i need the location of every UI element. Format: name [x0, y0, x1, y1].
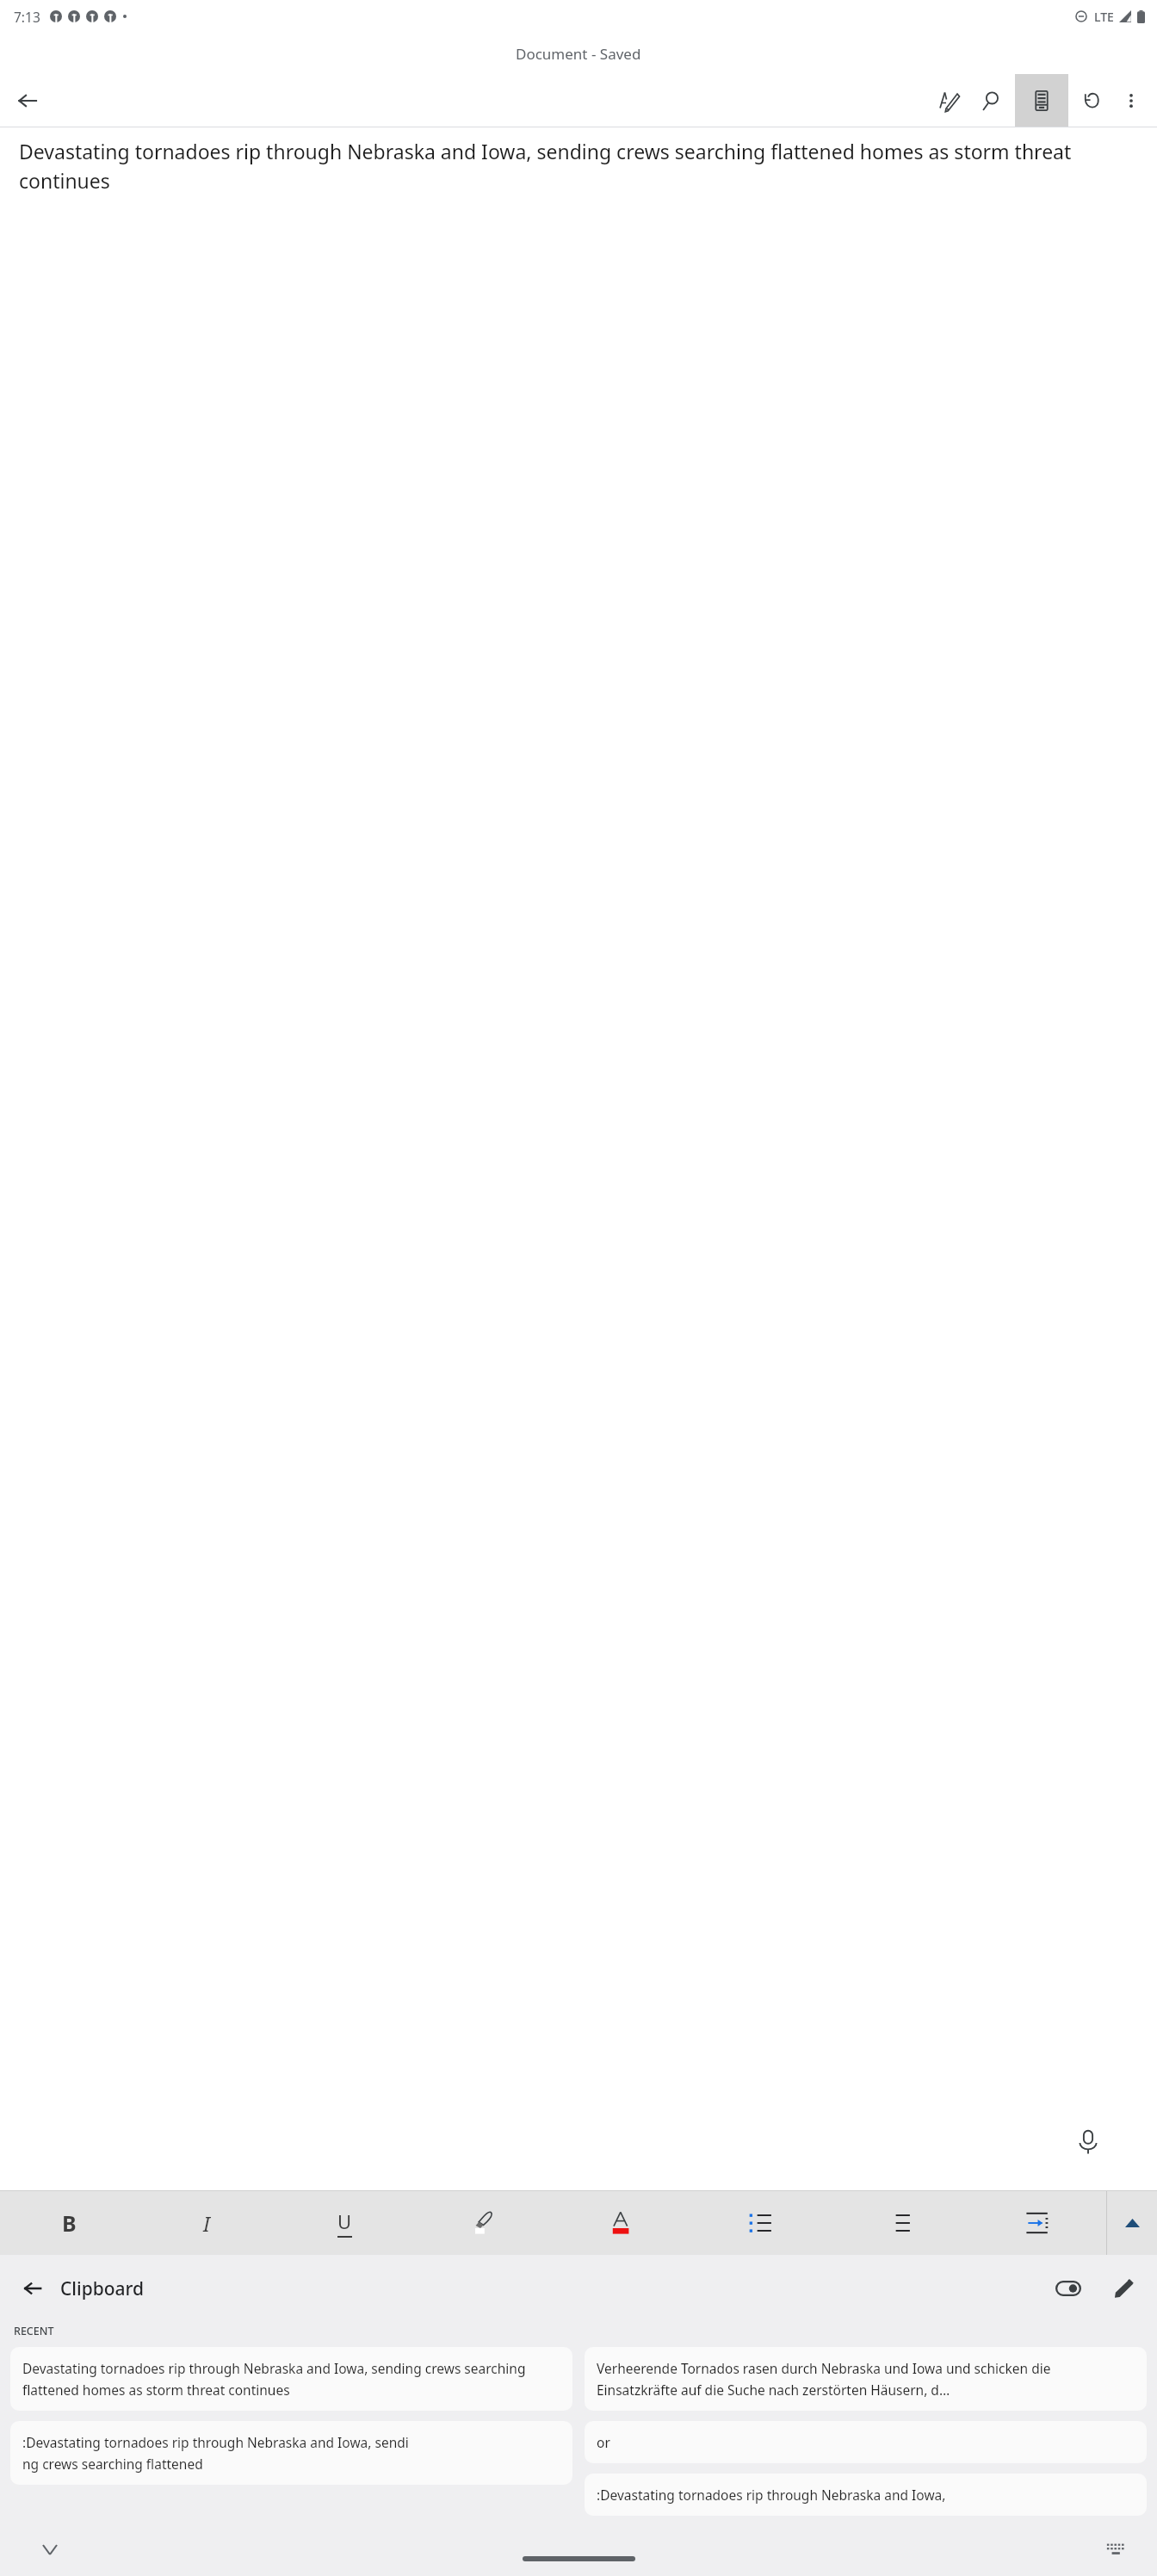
- button[interactable]: Collapse toolbar: [1107, 2191, 1157, 2255]
- button[interactable]: Search: [973, 82, 1011, 120]
- button[interactable]: Indent: [968, 2191, 1106, 2255]
- button[interactable]: Underline: [275, 2191, 413, 2255]
- button[interactable]: Switch keyboard: [1097, 2530, 1135, 2568]
- button[interactable]: Back: [7, 80, 48, 121]
- button[interactable]: Bold: [0, 2191, 138, 2255]
- button[interactable]: or: [585, 2421, 1147, 2463]
- button[interactable]: Edit clipboard: [1104, 2269, 1143, 2308]
- button[interactable]: More options: [1112, 82, 1150, 120]
- button[interactable]: Back: [12, 2268, 53, 2309]
- button[interactable]: Italic: [138, 2191, 275, 2255]
- staticText: LTE: [1094, 9, 1114, 25]
- button[interactable]: View mode: [1015, 74, 1068, 127]
- staticText: 7:13: [14, 8, 40, 26]
- button[interactable]: Bulleted list: [690, 2191, 829, 2255]
- staticText: RECENT: [14, 2324, 54, 2338]
- staticText: :Devastating tornadoes rip through Nebra…: [597, 2486, 946, 2504]
- staticText: Clipboard: [60, 2276, 145, 2301]
- staticText: I: [203, 2209, 210, 2238]
- button[interactable]: Text color: [552, 2191, 690, 2255]
- button[interactable]: Devastating tornadoes rip through Nebras…: [10, 2347, 572, 2411]
- staticText: Document - Saved: [516, 44, 641, 64]
- staticText: :Devastating tornadoes rip through Nebra…: [22, 2433, 409, 2473]
- button[interactable]: Toggle clipboard sync: [1049, 2269, 1088, 2308]
- button[interactable]: Pen: [930, 82, 968, 120]
- button[interactable]: Undo: [1073, 82, 1111, 120]
- staticText: or: [597, 2433, 610, 2451]
- staticText: B: [62, 2208, 77, 2238]
- staticText: Devastating tornadoes rip through Nebras…: [19, 138, 1138, 194]
- button[interactable]: Hide keyboard: [31, 2530, 69, 2568]
- staticText: Devastating tornadoes rip through Nebras…: [22, 2359, 560, 2399]
- staticText: Verheerende Tornados rasen durch Nebrask…: [597, 2359, 1135, 2399]
- staticText: U: [337, 2208, 352, 2234]
- button[interactable]: :Devastating tornadoes rip through Nebra…: [585, 2474, 1147, 2516]
- button[interactable]: Verheerende Tornados rasen durch Nebrask…: [585, 2347, 1147, 2411]
- button[interactable]: Highlight: [413, 2191, 552, 2255]
- button[interactable]: :Devastating tornadoes rip through Nebra…: [10, 2421, 572, 2485]
- button[interactable]: Voice input: [1059, 2113, 1117, 2170]
- button[interactable]: Numbered list: [829, 2191, 968, 2255]
